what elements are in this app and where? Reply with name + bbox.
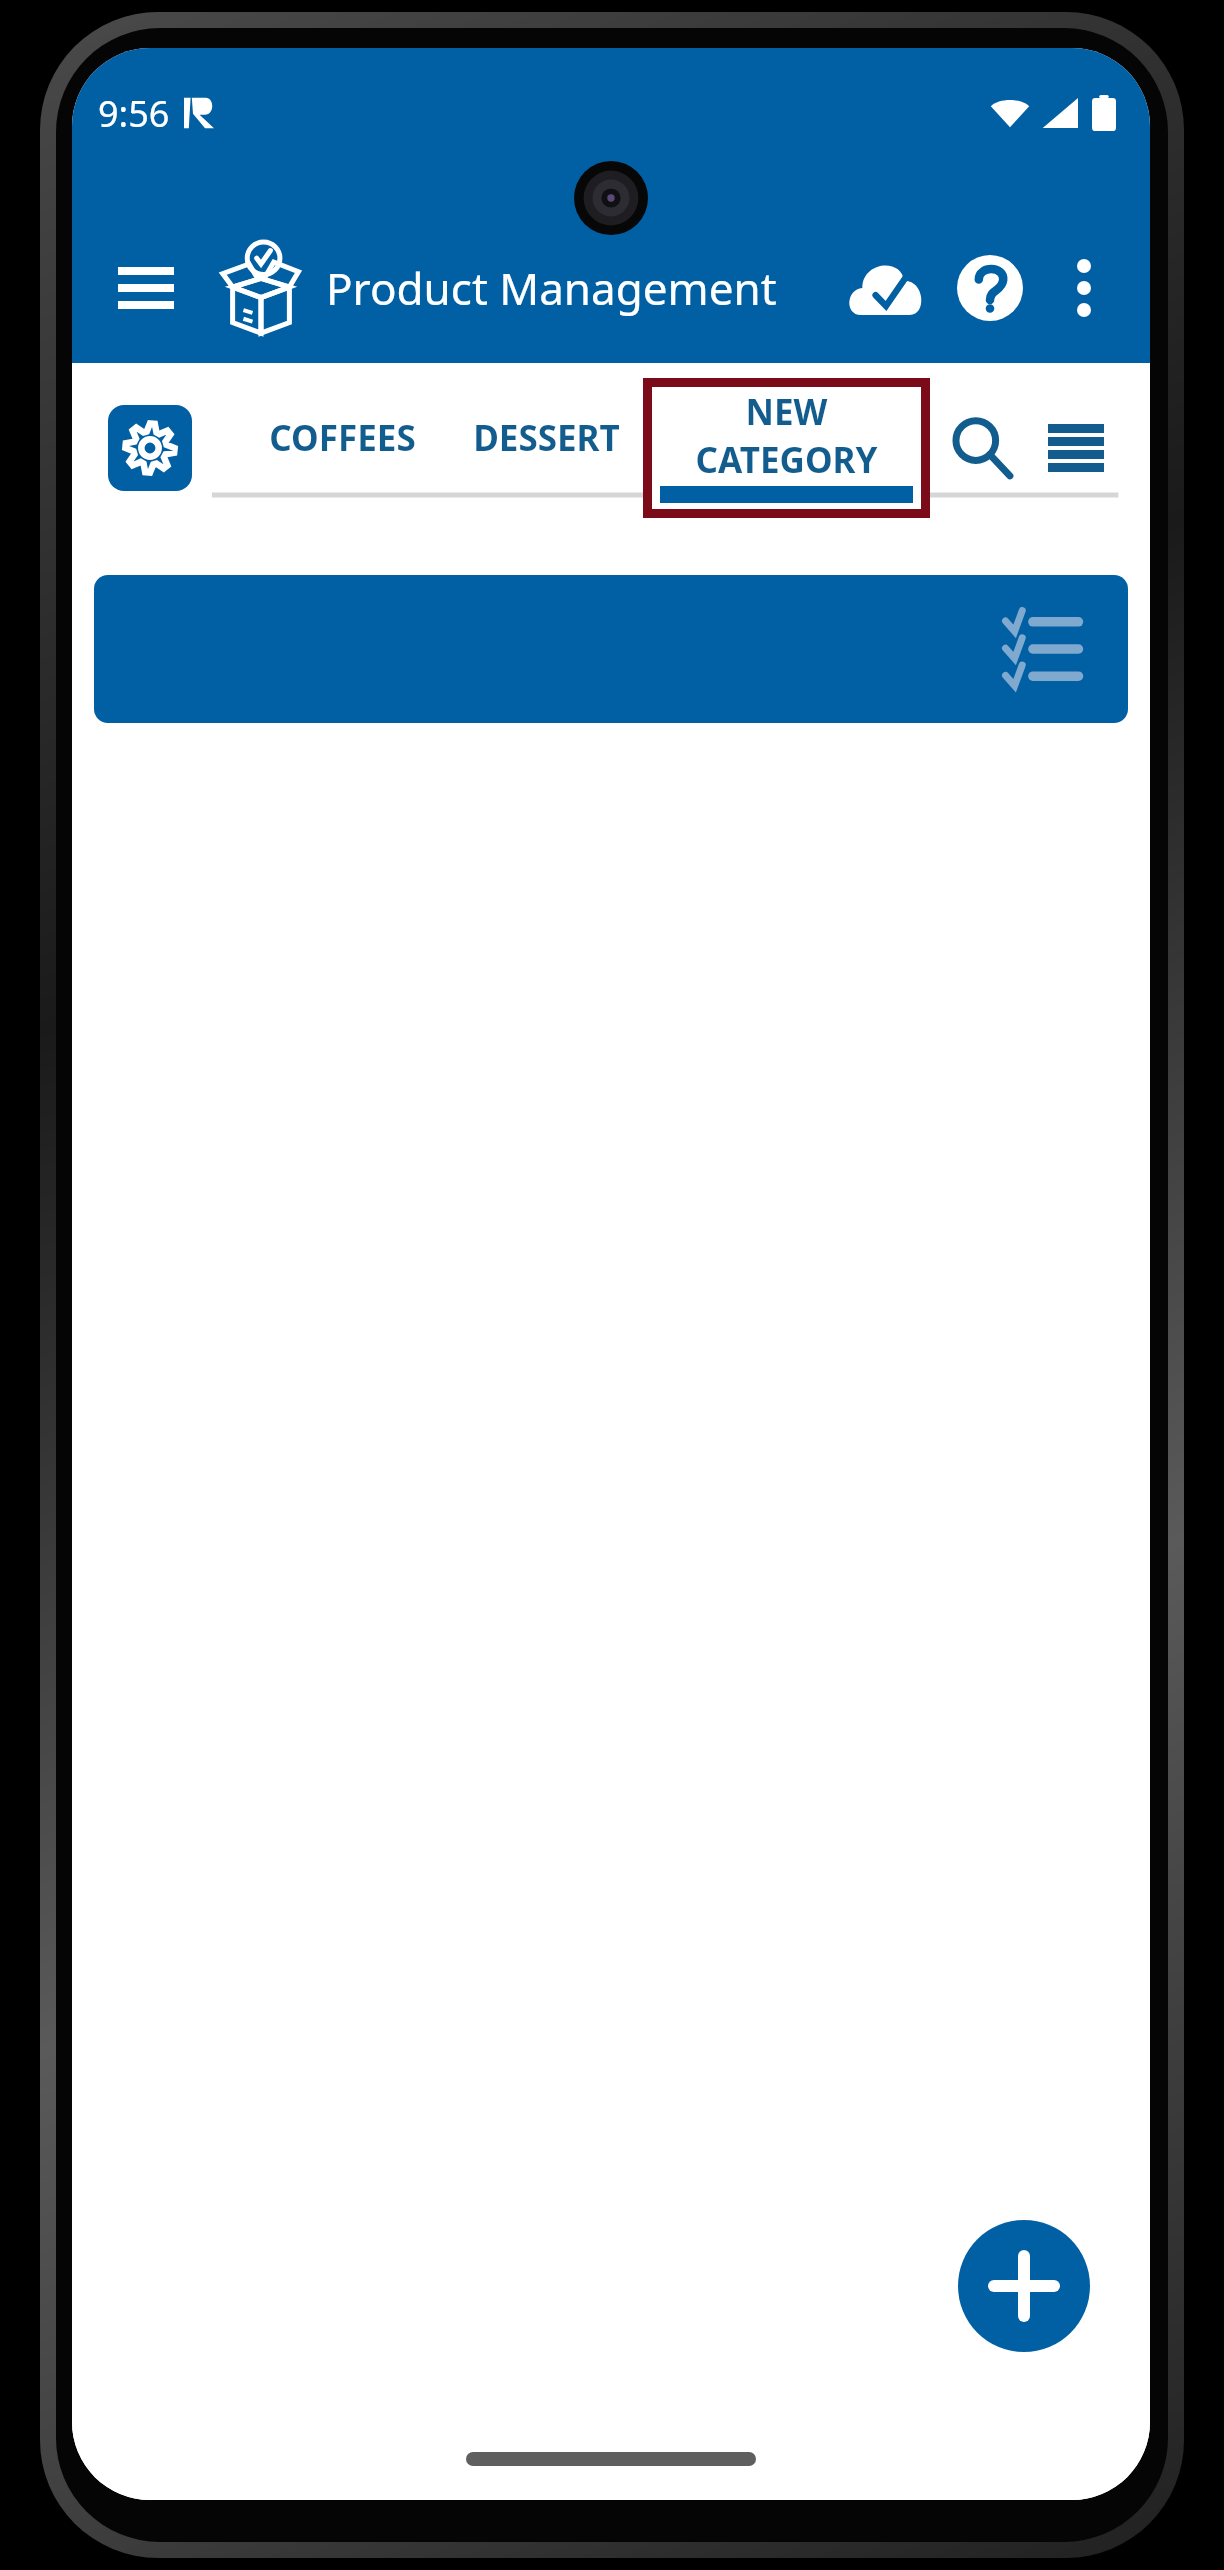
button[interactable]: Settings — [108, 405, 192, 491]
button[interactable]: Help — [944, 242, 1036, 334]
button[interactable]: Sync status — [840, 242, 932, 334]
button[interactable]: COFFEES — [235, 367, 450, 529]
staticText: Product Management — [326, 258, 777, 318]
button[interactable]: NEW CATEGORY — [652, 387, 921, 509]
staticText: NEW CATEGORY — [652, 388, 921, 484]
button[interactable]: Add — [958, 2220, 1090, 2352]
button[interactable] — [94, 575, 1128, 723]
staticText: COFFEES — [269, 414, 416, 462]
button[interactable]: More options — [1046, 250, 1122, 326]
staticText: DESSERT — [473, 414, 620, 462]
button[interactable]: Search — [936, 402, 1028, 494]
button[interactable]: List options — [1030, 402, 1122, 494]
button[interactable]: DESSERT — [450, 367, 643, 529]
staticText: 9:56 — [98, 89, 170, 138]
button[interactable]: Navigation menu — [102, 244, 190, 332]
